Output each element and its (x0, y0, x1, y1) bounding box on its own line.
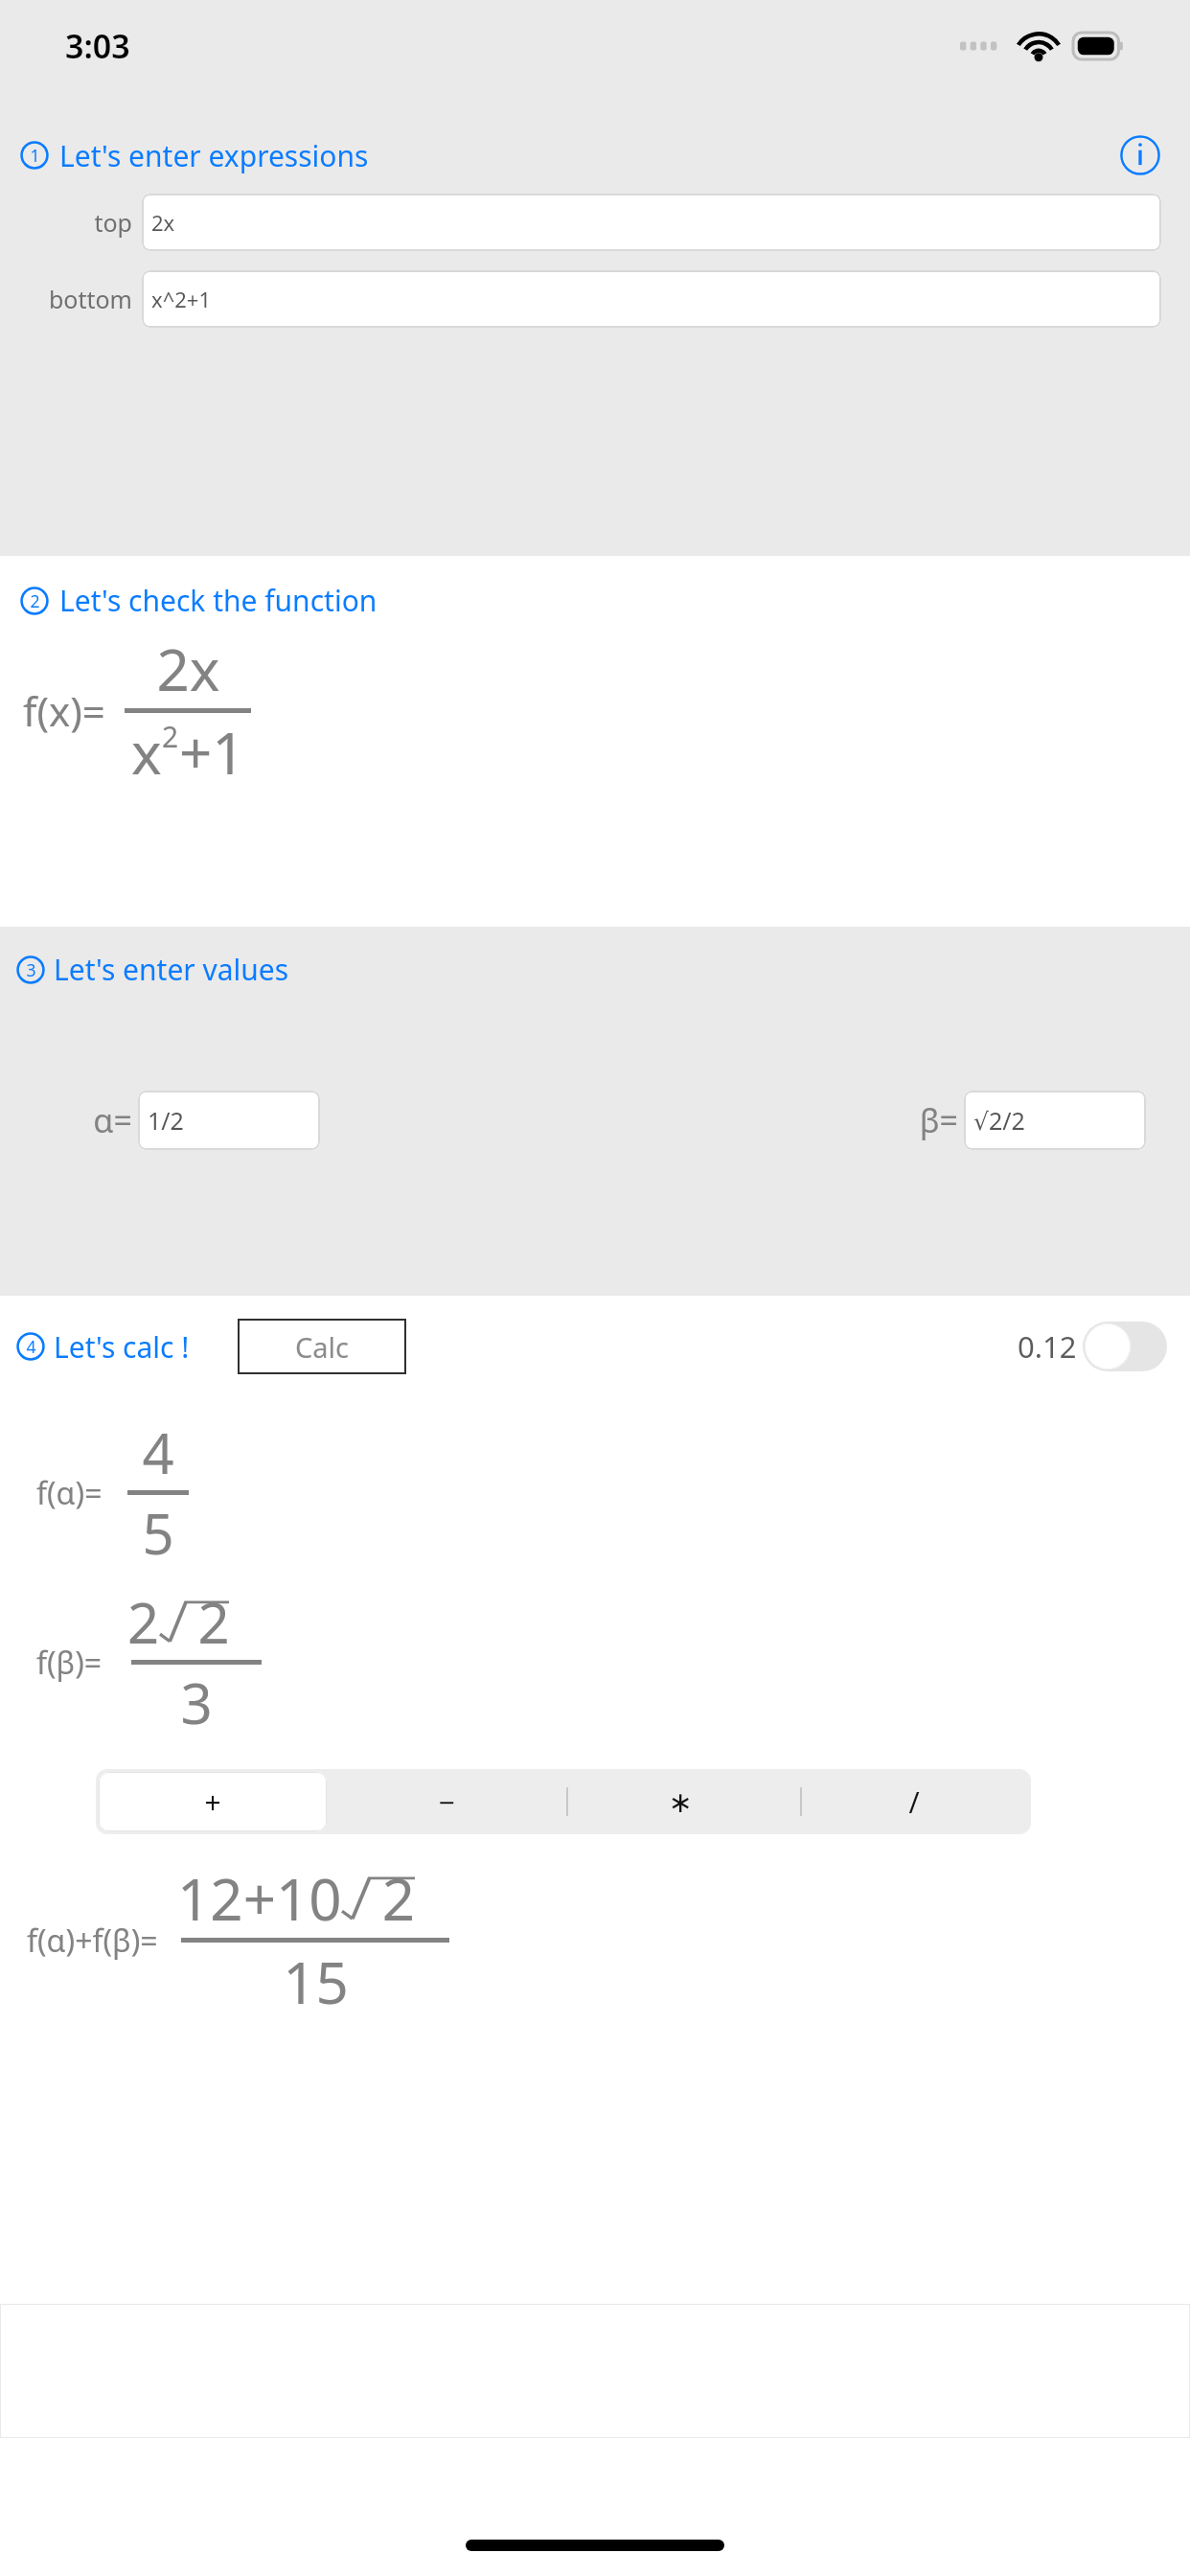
staticText: β= (889, 1098, 958, 1142)
staticText: f(α)+f(β)= (27, 1920, 158, 1962)
staticText: Let's enter expressions (59, 136, 369, 175)
staticText: +1 (179, 713, 245, 792)
button[interactable]: ∗ (566, 1772, 794, 1831)
staticText: 3 (180, 1665, 213, 1740)
button[interactable]: x^2+1 (142, 270, 1161, 328)
staticText: x^2+1 (151, 285, 211, 313)
staticText: f(α)= (36, 1472, 103, 1514)
staticText: 2 (30, 589, 40, 612)
staticText: f(x)= (23, 683, 105, 738)
staticText: 0.12 (1018, 1326, 1077, 1367)
staticText: − (438, 1782, 455, 1822)
staticText: + (204, 1782, 221, 1822)
button[interactable]: √2/2 (964, 1091, 1146, 1150)
staticText: Let's calc ! (54, 1327, 190, 1367)
button[interactable]: 1/2 (138, 1091, 320, 1150)
staticText: 2 (195, 1584, 232, 1660)
staticText: top (0, 206, 132, 239)
staticText: Let's enter values (54, 950, 289, 989)
staticText: 1 (30, 144, 40, 167)
staticText: 2 (127, 1584, 160, 1660)
staticText: 2x (151, 208, 175, 237)
staticText: / (908, 1782, 920, 1822)
staticText: 2 (379, 1859, 418, 1938)
staticText: ∗ (668, 1785, 693, 1819)
staticText: α= (63, 1098, 132, 1142)
button[interactable]: − (332, 1772, 561, 1831)
button[interactable]: Info (1119, 134, 1161, 176)
staticText: Let's check the function (59, 581, 378, 620)
staticText: 3:03 (65, 24, 130, 68)
staticText: f(β)= (36, 1642, 103, 1684)
staticText: √2/2 (973, 1104, 1025, 1137)
staticText: 3 (26, 958, 36, 981)
staticText: 4 (142, 1414, 174, 1490)
button[interactable]: Toggle exact value (1083, 1322, 1167, 1371)
staticText: Calc (295, 1328, 349, 1366)
button[interactable]: Calc (238, 1319, 406, 1374)
staticText: 2 (162, 717, 179, 756)
staticText: 12+10 (177, 1859, 342, 1938)
staticText: 5 (142, 1495, 174, 1571)
staticText: 2x (156, 630, 220, 708)
button[interactable]: / (800, 1772, 1028, 1831)
staticText: 4 (26, 1335, 36, 1358)
staticText: x (131, 713, 162, 792)
staticText: bottom (0, 283, 132, 315)
staticText: 1/2 (148, 1104, 184, 1137)
button[interactable]: 2x (142, 194, 1161, 251)
button[interactable]: + (99, 1772, 327, 1831)
staticText: 15 (283, 1943, 349, 2021)
